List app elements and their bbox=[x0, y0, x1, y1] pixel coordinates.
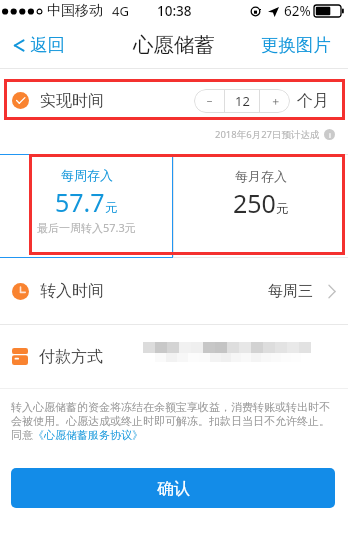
button[interactable]: 《心愿储蓄服务协议》 bbox=[33, 428, 143, 442]
staticText: i bbox=[329, 130, 331, 140]
button[interactable]: 返回 bbox=[10, 22, 68, 68]
staticText: 《心愿储蓄服务协议》 bbox=[33, 428, 143, 442]
staticText: － bbox=[204, 94, 215, 108]
staticText: 62% bbox=[284, 2, 311, 20]
staticText: 每周三 bbox=[268, 282, 313, 301]
button[interactable]: 每月存入 bbox=[174, 155, 348, 257]
staticText: 心愿储蓄 bbox=[133, 32, 215, 58]
button[interactable]: 确认 bbox=[11, 468, 335, 508]
button[interactable]: 付款方式 bbox=[0, 325, 348, 388]
other: More bbox=[328, 284, 336, 299]
staticText: 最后一周转入57.3元 bbox=[37, 220, 136, 235]
staticText: 更换图片 bbox=[261, 34, 331, 56]
button[interactable]: 更换图片 bbox=[261, 22, 348, 68]
staticText: 57.7 bbox=[55, 185, 105, 219]
staticText: 同意 bbox=[11, 428, 33, 442]
staticText: 付款方式 bbox=[39, 347, 103, 367]
staticText: 12 bbox=[235, 92, 250, 110]
staticText: 实现时间 bbox=[40, 91, 104, 111]
staticText: ＋ bbox=[270, 94, 281, 108]
staticText: 每月存入 bbox=[235, 168, 287, 184]
staticText: 250 bbox=[233, 186, 276, 220]
staticText: 4G bbox=[112, 2, 129, 20]
staticText: 返回 bbox=[30, 34, 65, 56]
button[interactable]: Decrease bbox=[194, 89, 224, 113]
staticText: 确认 bbox=[157, 478, 190, 499]
staticText: 中国移动 bbox=[47, 2, 103, 20]
button[interactable]: Increase bbox=[260, 89, 290, 113]
button[interactable]: 每周存入 bbox=[0, 155, 173, 257]
staticText: 个月 bbox=[297, 91, 329, 111]
button[interactable]: 实现时间 bbox=[0, 80, 348, 121]
button[interactable]: 转入时间 bbox=[0, 258, 348, 324]
staticText: 转入心愿储蓄的资金将冻结在余额宝享收益，消费转账或转出时不会被使用。心愿达成或终… bbox=[11, 400, 333, 428]
staticText: 2018年6月27日预计达成 bbox=[215, 128, 320, 141]
staticText: 转入时间 bbox=[40, 281, 104, 301]
staticText: 元 bbox=[276, 201, 289, 217]
staticText: 每周存入 bbox=[61, 167, 113, 183]
staticText: 元 bbox=[105, 200, 118, 216]
staticText: 10:38 bbox=[157, 2, 192, 20]
